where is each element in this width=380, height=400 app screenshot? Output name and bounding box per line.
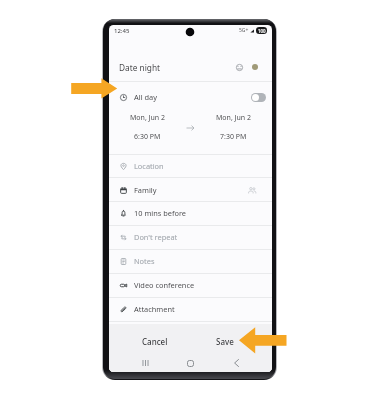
button[interactable]: Save xyxy=(193,328,257,354)
staticText: Notes xyxy=(134,256,155,266)
staticText: Family xyxy=(134,185,157,195)
staticText: Don't repeat xyxy=(134,232,178,242)
button[interactable]: 10 mins before xyxy=(109,201,272,225)
button[interactable]: Attachment xyxy=(109,297,272,321)
staticText: 6:30 PM xyxy=(134,132,161,142)
staticText: Video conference xyxy=(134,280,195,290)
button[interactable]: Mon, Jun 2 xyxy=(109,105,185,150)
button[interactable]: Recent apps xyxy=(137,355,153,371)
staticText: 10 mins before xyxy=(134,208,187,218)
button[interactable]: All day xyxy=(109,86,272,108)
staticText: Cancel xyxy=(142,336,168,347)
button[interactable]: Back xyxy=(228,355,244,371)
staticText: 7:30 PM xyxy=(220,132,247,142)
button[interactable]: Location xyxy=(109,154,272,178)
button[interactable]: Home xyxy=(182,355,198,371)
staticText: Mon, Jun 2 xyxy=(130,113,165,123)
button[interactable]: Cancel xyxy=(123,328,187,354)
button[interactable]: Mon, Jun 2 xyxy=(195,105,272,150)
staticText: Location xyxy=(134,161,164,171)
staticText: Mon, Jun 2 xyxy=(216,113,251,123)
staticText: Save xyxy=(216,336,234,347)
staticText: Date night xyxy=(119,62,161,73)
button[interactable]: Family xyxy=(109,178,272,202)
staticText: 12:45 xyxy=(114,27,130,35)
staticText: 5G+ xyxy=(239,27,249,34)
staticText: Attachment xyxy=(134,304,175,314)
button[interactable]: Calendar colour xyxy=(249,61,261,73)
button[interactable]: Video conference xyxy=(109,273,272,297)
button[interactable]: Don't repeat xyxy=(109,225,272,249)
staticText: All day xyxy=(134,92,157,102)
button[interactable]: Notes xyxy=(109,249,272,273)
staticText: 100 xyxy=(258,28,266,34)
button[interactable]: Add emoji xyxy=(233,61,245,73)
